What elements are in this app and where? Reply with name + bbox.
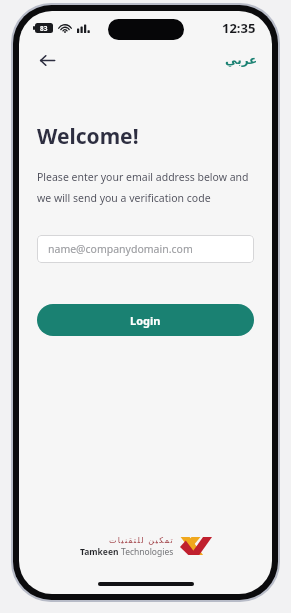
staticText: 83 (40, 24, 48, 33)
staticText: 12:35 (222, 19, 256, 37)
staticText: Welcome! (37, 122, 139, 151)
staticText: Tamkeen (80, 546, 121, 558)
staticText: Please enter your email address below an… (37, 170, 249, 205)
staticText: name@companydomain.com (48, 242, 193, 256)
staticText: Login (130, 313, 161, 328)
staticText: عربي (225, 53, 258, 67)
staticText: تمكين للتقنيات (109, 534, 174, 545)
staticText: Technologies (121, 546, 174, 558)
button[interactable]: Back (31, 45, 63, 75)
button[interactable]: name@companydomain.com (37, 235, 254, 263)
button[interactable]: عربي (221, 50, 262, 70)
button[interactable]: Login (37, 304, 254, 336)
